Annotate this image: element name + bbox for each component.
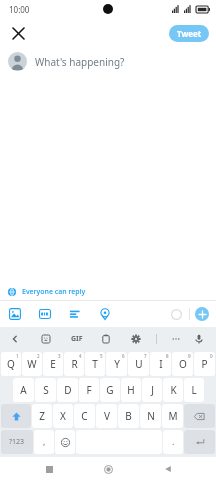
button[interactable]: More — [168, 331, 184, 347]
button[interactable]: . — [163, 430, 183, 454]
button[interactable]: H — [121, 378, 141, 402]
button[interactable]: V — [96, 404, 117, 428]
button[interactable]: L — [184, 378, 204, 402]
button[interactable]: Enter — [184, 430, 215, 454]
button[interactable]: Y — [106, 352, 127, 376]
button[interactable]: U — [128, 352, 149, 376]
button[interactable]: Character count — [168, 306, 184, 322]
button[interactable]: A — [13, 378, 34, 402]
button[interactable]: ?123 — [1, 430, 33, 454]
button[interactable]: Close — [5, 20, 31, 46]
button[interactable]: O — [172, 352, 193, 376]
staticText: V — [104, 409, 110, 423]
button[interactable]: I — [150, 352, 171, 376]
staticText: U — [135, 357, 143, 371]
staticText: M — [168, 409, 178, 423]
button[interactable]: Add location — [96, 305, 114, 323]
staticText: 4 — [79, 353, 82, 359]
staticText: S — [43, 383, 49, 397]
button[interactable]: Settings — [128, 331, 144, 347]
staticText: , — [43, 435, 46, 447]
staticText: GIF — [71, 334, 83, 344]
staticText: G — [106, 383, 114, 397]
staticText: 7 — [144, 353, 147, 359]
button[interactable]: N — [140, 404, 161, 428]
staticText: K — [170, 383, 177, 397]
staticText: 0 — [210, 353, 213, 359]
staticText: ?123 — [9, 437, 25, 447]
staticText: 1 — [16, 353, 19, 359]
staticText: A — [20, 383, 27, 397]
button[interactable]: M — [162, 404, 183, 428]
button[interactable]: Tweet — [169, 25, 209, 42]
button[interactable]: R — [64, 352, 84, 376]
button[interactable]: , — [34, 430, 54, 454]
staticText: 6 — [122, 353, 125, 359]
button[interactable]: C — [74, 404, 95, 428]
button[interactable]: Clipboard — [98, 331, 114, 347]
button[interactable]: Profile picture — [8, 52, 27, 71]
staticText: D — [64, 383, 72, 397]
staticText: W — [27, 357, 37, 371]
button[interactable]: P — [194, 352, 215, 376]
button[interactable]: Add GIF — [36, 305, 54, 323]
staticText: Everyone can reply — [22, 287, 86, 297]
button[interactable]: Q — [1, 352, 21, 376]
button[interactable]: Back — [7, 331, 23, 347]
button[interactable]: Home — [97, 458, 119, 480]
button[interactable]: Stickers — [38, 331, 54, 347]
button[interactable]: Emoji — [55, 430, 75, 454]
staticText: P — [201, 357, 208, 371]
button[interactable]: Add photo — [6, 305, 24, 323]
staticText: T — [92, 357, 98, 371]
staticText: . — [172, 435, 175, 447]
staticText: Z — [39, 409, 45, 423]
button[interactable]: Recent apps — [38, 458, 60, 480]
staticText: Q — [7, 357, 15, 371]
staticText: 5 — [100, 353, 103, 359]
button[interactable]: B — [118, 404, 139, 428]
button[interactable]: GIF — [68, 330, 86, 348]
staticText: O — [179, 357, 187, 371]
button[interactable]: Add tweet — [195, 307, 209, 321]
staticText: L — [191, 383, 197, 397]
button[interactable]: Back — [157, 458, 179, 480]
button[interactable]: Z — [32, 404, 52, 428]
staticText: Tweet — [177, 28, 202, 39]
staticText: 2 — [37, 353, 40, 359]
button[interactable]: Shift — [1, 404, 31, 428]
button[interactable]: F — [79, 378, 99, 402]
staticText: Y — [114, 357, 120, 371]
staticText: J — [151, 383, 154, 397]
staticText: 10:00 — [9, 4, 30, 15]
button[interactable]: Voice input — [191, 331, 207, 347]
staticText: F — [86, 383, 92, 397]
button[interactable]: D — [57, 378, 78, 402]
staticText: E — [50, 357, 56, 371]
staticText: 3 — [58, 353, 61, 359]
staticText: H — [127, 383, 135, 397]
staticText: R — [71, 357, 78, 371]
button[interactable]: J — [142, 378, 162, 402]
button[interactable]: W — [22, 352, 42, 376]
button[interactable]: K — [163, 378, 183, 402]
staticText: I — [159, 357, 163, 371]
staticText: 9 — [188, 353, 191, 359]
staticText: X — [60, 409, 66, 423]
button[interactable]: E — [43, 352, 63, 376]
button[interactable]: S — [35, 378, 56, 402]
button[interactable]: T — [85, 352, 105, 376]
staticText: C — [81, 409, 88, 423]
staticText: What's happening? — [35, 55, 125, 69]
staticText: 8 — [166, 353, 169, 359]
button[interactable]: Everyone can reply — [0, 283, 216, 300]
button[interactable]: G — [100, 378, 120, 402]
button[interactable]: X — [53, 404, 73, 428]
staticText: N — [147, 409, 155, 423]
staticText: B — [125, 409, 132, 423]
button[interactable]: Add poll — [66, 305, 84, 323]
button[interactable]: Backspace — [184, 404, 215, 428]
